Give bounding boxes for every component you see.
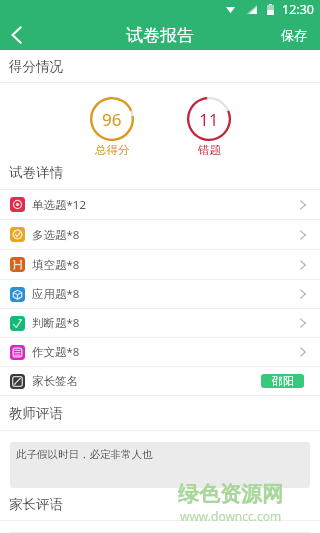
staticText: 多选题*8 bbox=[32, 227, 80, 243]
button[interactable]: 保存 bbox=[268, 19, 320, 50]
button[interactable]: 填空题*8 bbox=[0, 250, 320, 280]
staticText: 家长评语 bbox=[9, 496, 63, 513]
button[interactable]: 家长签名 bbox=[0, 367, 320, 396]
staticText: 填空题*8 bbox=[32, 257, 80, 273]
staticText: 邵阳 bbox=[272, 374, 294, 388]
button[interactable]: 判断题*8 bbox=[0, 309, 320, 338]
staticText: 家长签名 bbox=[32, 374, 78, 388]
staticText: 判断题*8 bbox=[32, 315, 80, 331]
staticText: 错题 bbox=[198, 143, 221, 157]
staticText: 96 bbox=[102, 108, 122, 131]
staticText: 绿色资源网 bbox=[178, 481, 283, 507]
staticText: 试卷报告 bbox=[126, 25, 194, 46]
staticText: 此子假以时日，必定非常人也 bbox=[16, 448, 153, 461]
staticText: 总得分 bbox=[95, 143, 130, 157]
staticText: 11 bbox=[199, 108, 219, 131]
staticText: 单选题*12 bbox=[32, 197, 86, 213]
staticText: 保存 bbox=[281, 27, 307, 43]
staticText: 试卷详情 bbox=[9, 164, 63, 181]
staticText: 教师评语 bbox=[9, 405, 63, 422]
staticText: 12:30 bbox=[282, 1, 314, 18]
button[interactable]: 作文题*8 bbox=[0, 338, 320, 367]
button[interactable]: Back bbox=[0, 19, 32, 50]
button[interactable]: 多选题*8 bbox=[0, 220, 320, 250]
button[interactable]: 应用题*8 bbox=[0, 280, 320, 309]
button[interactable]: 单选题*12 bbox=[0, 190, 320, 220]
staticText: 应用题*8 bbox=[32, 286, 80, 302]
staticText: www.downcc.com bbox=[180, 508, 282, 524]
staticText: 作文题*8 bbox=[32, 344, 80, 360]
staticText: 得分情况 bbox=[9, 58, 63, 75]
